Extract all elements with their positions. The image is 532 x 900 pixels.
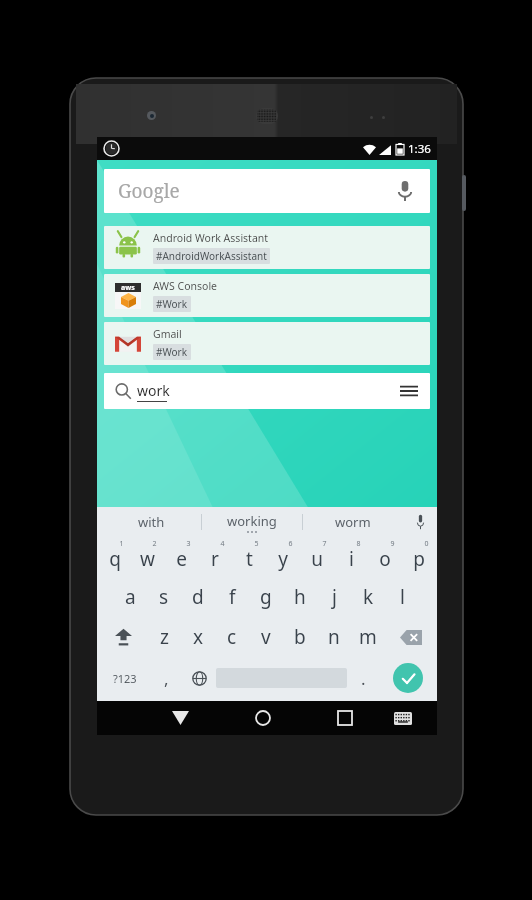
staticText: #Work bbox=[156, 345, 188, 359]
button[interactable]: . bbox=[347, 657, 380, 699]
staticText: 8 bbox=[356, 539, 361, 549]
button[interactable]: f bbox=[215, 577, 249, 617]
button[interactable]: Voice input bbox=[403, 507, 437, 537]
staticText: working bbox=[227, 512, 277, 530]
button[interactable]: 2 bbox=[131, 537, 164, 577]
button[interactable]: Gmail bbox=[104, 322, 430, 365]
button[interactable]: h bbox=[283, 577, 317, 617]
staticText: m bbox=[359, 624, 377, 650]
button[interactable]: s bbox=[147, 577, 181, 617]
button[interactable]: 7 bbox=[300, 537, 334, 577]
staticText: j bbox=[332, 584, 337, 610]
staticText: 9 bbox=[390, 539, 395, 549]
staticText: b bbox=[294, 624, 306, 650]
button[interactable]: 5 bbox=[232, 537, 266, 577]
staticText: k bbox=[363, 584, 374, 610]
staticText: with bbox=[138, 513, 165, 531]
staticText: f bbox=[229, 584, 236, 610]
staticText: l bbox=[400, 584, 405, 610]
button[interactable]: Keyboard bbox=[381, 701, 424, 735]
button[interactable]: Voice search bbox=[394, 180, 416, 202]
button[interactable]: m bbox=[351, 617, 385, 657]
staticText: x bbox=[193, 624, 204, 650]
staticText: . bbox=[361, 667, 366, 690]
button[interactable]: v bbox=[249, 617, 283, 657]
staticText: 5 bbox=[254, 539, 259, 549]
staticText: q bbox=[109, 546, 121, 572]
button[interactable]: ?123 bbox=[99, 657, 150, 699]
button[interactable]: 3 bbox=[164, 537, 198, 577]
staticText: p bbox=[413, 546, 425, 572]
staticText: u bbox=[311, 546, 323, 572]
staticText: work bbox=[137, 381, 170, 400]
staticText: AWS Console bbox=[153, 279, 218, 293]
button[interactable]: z bbox=[148, 617, 181, 657]
button[interactable]: Android Work Assistant bbox=[104, 226, 430, 269]
staticText: z bbox=[160, 624, 169, 650]
button[interactable]: Back bbox=[159, 701, 202, 735]
button[interactable]: n bbox=[317, 617, 351, 657]
button[interactable]: , bbox=[150, 657, 183, 699]
staticText: w bbox=[140, 546, 155, 572]
button[interactable]: Change language bbox=[183, 657, 216, 699]
staticText: d bbox=[192, 584, 204, 610]
button[interactable]: c bbox=[215, 617, 249, 657]
staticText: Android Work Assistant bbox=[153, 231, 269, 245]
button[interactable]: 8 bbox=[334, 537, 368, 577]
button[interactable]: 1 bbox=[98, 537, 131, 577]
staticText: r bbox=[211, 546, 219, 572]
button[interactable]: worm bbox=[303, 507, 403, 537]
staticText: y bbox=[278, 546, 288, 572]
staticText: 3 bbox=[186, 539, 191, 549]
staticText: Gmail bbox=[153, 327, 182, 341]
button[interactable]: with bbox=[101, 507, 201, 537]
staticText: i bbox=[349, 546, 354, 572]
staticText: 4 bbox=[220, 539, 225, 549]
staticText: n bbox=[328, 624, 340, 650]
staticText: h bbox=[294, 584, 306, 610]
button[interactable]: Menu bbox=[399, 381, 419, 401]
button[interactable]: working bbox=[202, 507, 302, 537]
staticText: #AndroidWorkAssistant bbox=[156, 249, 267, 263]
staticText: worm bbox=[335, 513, 371, 531]
staticText: 7 bbox=[322, 539, 327, 549]
button[interactable]: x bbox=[181, 617, 215, 657]
staticText: t bbox=[246, 546, 253, 572]
staticText: 0 bbox=[424, 539, 429, 549]
staticText: 1:36 bbox=[408, 141, 431, 157]
button[interactable]: Recents bbox=[323, 701, 366, 735]
button[interactable]: k bbox=[351, 577, 385, 617]
button[interactable]: d bbox=[181, 577, 215, 617]
staticText: ?123 bbox=[113, 671, 137, 686]
staticText: Google bbox=[118, 178, 180, 204]
button[interactable]: g bbox=[249, 577, 283, 617]
staticText: c bbox=[227, 624, 237, 650]
button[interactable]: 6 bbox=[266, 537, 300, 577]
button[interactable]: Backspace bbox=[385, 617, 436, 657]
button[interactable]: l bbox=[385, 577, 419, 617]
staticText: #Work bbox=[156, 297, 188, 311]
button[interactable]: Shift bbox=[98, 617, 148, 657]
button[interactable]: Search bbox=[380, 657, 435, 699]
staticText: a bbox=[125, 584, 136, 610]
button[interactable]: aws bbox=[104, 274, 430, 317]
staticText: 2 bbox=[152, 539, 157, 549]
button[interactable]: Google bbox=[104, 169, 430, 213]
button[interactable]: j bbox=[317, 577, 351, 617]
button[interactable]: Home bbox=[241, 701, 284, 735]
button[interactable]: a bbox=[114, 577, 147, 617]
staticText: s bbox=[159, 584, 169, 610]
staticText: e bbox=[176, 546, 187, 572]
button[interactable]: 9 bbox=[368, 537, 402, 577]
staticText: 6 bbox=[288, 539, 293, 549]
staticText: o bbox=[379, 546, 391, 572]
staticText: aws bbox=[121, 283, 135, 292]
button[interactable]: work bbox=[104, 373, 430, 409]
button[interactable]: 0 bbox=[402, 537, 436, 577]
staticText: 1 bbox=[119, 539, 124, 549]
staticText: g bbox=[260, 584, 272, 610]
button[interactable]: b bbox=[283, 617, 317, 657]
staticText: , bbox=[164, 667, 169, 690]
button[interactable]: 4 bbox=[198, 537, 232, 577]
